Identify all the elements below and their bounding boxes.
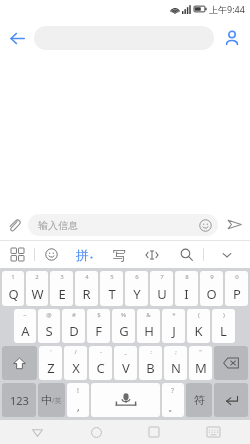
button[interactable]: Switch keyboard <box>196 420 230 444</box>
staticText: 1 <box>11 273 15 281</box>
staticText: B <box>146 359 155 377</box>
button[interactable]: 3 <box>50 271 73 306</box>
staticText: ; <box>175 348 177 356</box>
button[interactable]: 4 <box>75 271 98 306</box>
button[interactable]: ! <box>67 383 89 417</box>
staticText: 6 <box>135 273 139 281</box>
staticText: N <box>171 359 181 377</box>
staticText: 中 <box>41 393 52 407</box>
button[interactable]: Attach <box>0 208 28 241</box>
staticText: X <box>72 359 80 377</box>
staticText: V <box>122 359 130 377</box>
staticText: H <box>144 322 154 340</box>
staticText: $ <box>97 311 101 319</box>
button[interactable]: 6 <box>125 271 148 306</box>
staticText: # <box>72 311 76 319</box>
staticText: ( <box>198 311 200 319</box>
staticText: - <box>100 348 102 356</box>
button[interactable]: 8 <box>175 271 198 306</box>
staticText: I <box>184 285 189 303</box>
staticText: @ <box>46 311 52 319</box>
button[interactable]: Backspace <box>214 346 248 380</box>
button[interactable]: Cursor <box>135 241 169 268</box>
button[interactable]: ) <box>212 309 235 343</box>
staticText: E <box>58 285 66 303</box>
button[interactable]: Recents <box>137 420 171 444</box>
staticText: ? <box>171 386 175 396</box>
button[interactable]: Handwriting <box>103 241 135 268</box>
button[interactable]: Symbols <box>186 383 212 417</box>
staticText: 123 <box>10 393 29 408</box>
button[interactable]: 7 <box>150 271 173 306</box>
button[interactable]: - <box>89 346 112 380</box>
staticText: C <box>96 359 105 377</box>
staticText: 2 <box>35 273 39 281</box>
staticText: 输入信息 <box>38 219 78 232</box>
staticText: : <box>150 348 152 356</box>
staticText: Y <box>133 285 141 303</box>
staticText: ~ <box>23 311 27 319</box>
staticText: T <box>108 285 116 303</box>
button[interactable]: Contacts <box>214 18 250 58</box>
staticText: G <box>119 322 129 340</box>
button[interactable]: Send <box>218 208 250 241</box>
button[interactable]: Back <box>0 18 34 58</box>
staticText: & <box>146 311 151 319</box>
button[interactable]: ' <box>39 346 62 380</box>
staticText: U <box>157 285 167 303</box>
button[interactable]: 1 <box>2 271 24 306</box>
button[interactable]: 2 <box>26 271 48 306</box>
staticText: 。 <box>168 401 178 414</box>
staticText: D <box>69 322 79 340</box>
button[interactable]: Hide keyboard <box>204 241 250 268</box>
staticText: W <box>31 285 44 303</box>
staticText: F <box>95 322 102 340</box>
button[interactable]: & <box>137 309 160 343</box>
button[interactable]: Home <box>79 420 113 444</box>
button[interactable]: Chinese English toggle <box>38 383 65 417</box>
staticText: 拼 <box>76 247 89 263</box>
button[interactable]: Search <box>169 241 203 268</box>
button[interactable]: 0 <box>225 271 248 306</box>
button[interactable]: ? <box>162 383 184 417</box>
staticText: P <box>233 285 241 303</box>
staticText: 4 <box>85 273 89 281</box>
button[interactable]: Space <box>91 383 160 417</box>
button[interactable]: Pinyin <box>67 241 103 268</box>
button[interactable]: 5 <box>100 271 123 306</box>
button[interactable]: 9 <box>200 271 223 306</box>
button[interactable]: 123 <box>2 383 36 417</box>
staticText: / <box>74 348 77 356</box>
staticText: O <box>206 285 217 303</box>
button[interactable]: _ <box>114 346 137 380</box>
staticText: * <box>172 311 176 319</box>
button[interactable]: : <box>139 346 162 380</box>
button[interactable]: * <box>162 309 185 343</box>
staticText: S <box>45 322 53 340</box>
button[interactable]: @ <box>38 309 60 343</box>
button[interactable]: 输入信息 <box>28 214 218 236</box>
button[interactable]: Apps <box>0 241 34 268</box>
button[interactable]: / <box>64 346 87 380</box>
staticText: ) <box>223 311 225 319</box>
staticText: K <box>194 322 203 340</box>
button[interactable]: % <box>112 309 135 343</box>
staticText: A <box>21 322 30 340</box>
staticText: ! <box>77 386 79 396</box>
staticText: ' <box>50 348 52 356</box>
button[interactable]: Enter <box>214 383 248 417</box>
button[interactable]: ~ <box>14 309 36 343</box>
button[interactable]: Shift <box>2 346 37 380</box>
button[interactable]: Emoji <box>35 241 67 268</box>
button[interactable]: ; <box>164 346 187 380</box>
staticText: , <box>77 400 80 414</box>
button[interactable]: " <box>189 346 212 380</box>
staticText: L <box>220 322 227 340</box>
button[interactable]: $ <box>87 309 110 343</box>
staticText: % <box>121 311 126 319</box>
button[interactable]: # <box>62 309 85 343</box>
staticText: Q <box>8 285 19 303</box>
button[interactable]: Back <box>20 420 54 444</box>
button[interactable]: ( <box>187 309 210 343</box>
